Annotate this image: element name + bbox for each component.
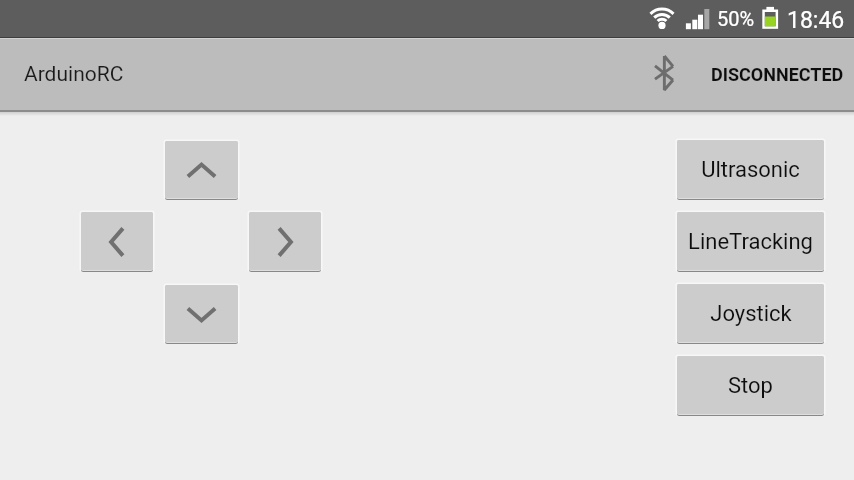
- staticText: LineTracking: [688, 229, 813, 255]
- staticText: 18:46: [787, 7, 845, 34]
- button[interactable]: Turn left: [81, 212, 153, 272]
- button[interactable]: Drive forward: [165, 141, 238, 200]
- button[interactable]: Bluetooth: [642, 38, 686, 110]
- staticText: ArduinoRC: [24, 62, 124, 87]
- button[interactable]: Ultrasonic: [677, 140, 824, 200]
- staticText: Stop: [728, 373, 773, 399]
- button[interactable]: DISCONNECTED: [700, 38, 854, 110]
- button[interactable]: Joystick: [677, 284, 824, 344]
- button[interactable]: Drive backward: [165, 285, 238, 344]
- button[interactable]: Turn right: [249, 212, 321, 272]
- button[interactable]: Stop: [677, 356, 824, 416]
- staticText: DISCONNECTED: [711, 64, 844, 85]
- staticText: Ultrasonic: [701, 157, 800, 183]
- button[interactable]: LineTracking: [677, 212, 824, 272]
- staticText: 50%: [717, 7, 755, 30]
- staticText: Joystick: [710, 301, 792, 327]
